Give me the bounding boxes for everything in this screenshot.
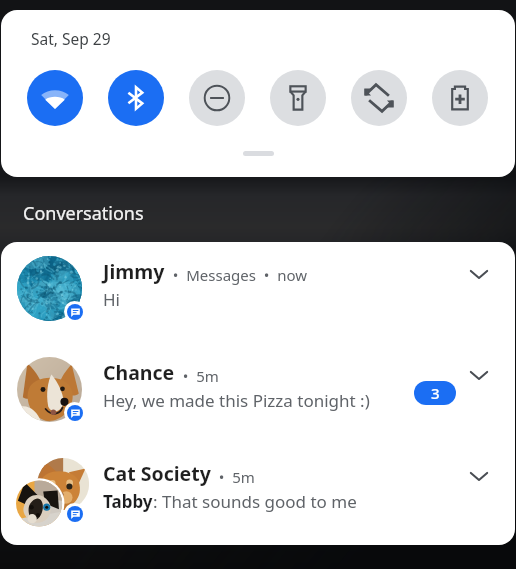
- button[interactable]: 3: [414, 381, 456, 405]
- button[interactable]: Auto-rotate: [351, 70, 407, 126]
- staticText: Sat, Sep 29: [31, 28, 111, 49]
- button[interactable]: Expand quick settings: [243, 151, 274, 156]
- staticText: Tabby: [103, 490, 153, 513]
- staticText: • 5m: [175, 366, 219, 386]
- staticText: Hi: [103, 288, 120, 311]
- staticText: • 5m: [211, 467, 255, 487]
- button[interactable]: Expand conversation: [459, 355, 499, 395]
- staticText: That sounds good to me: [162, 490, 357, 513]
- button[interactable]: Expand conversation: [459, 254, 499, 294]
- button[interactable]: Do not disturb: [189, 70, 245, 126]
- staticText: :: [153, 490, 162, 513]
- button[interactable]: Jimmy: [1, 242, 515, 343]
- button[interactable]: Bluetooth: [108, 70, 164, 126]
- staticText: Chance: [103, 359, 175, 386]
- staticText: Jimmy: [103, 258, 165, 285]
- staticText: • Messages • now: [165, 265, 308, 285]
- staticText: 3: [431, 383, 440, 403]
- button[interactable]: Battery saver: [432, 70, 488, 126]
- staticText: Conversations: [23, 201, 144, 226]
- staticText: Cat Society: [103, 460, 211, 487]
- button[interactable]: Chance: [1, 343, 515, 444]
- button[interactable]: Expand conversation: [459, 456, 499, 496]
- button[interactable]: Flashlight: [270, 70, 326, 126]
- button[interactable]: Wi-Fi: [27, 70, 83, 126]
- button[interactable]: Cat Society: [1, 444, 515, 545]
- staticText: Hey, we made this Pizza tonight :): [103, 389, 370, 412]
